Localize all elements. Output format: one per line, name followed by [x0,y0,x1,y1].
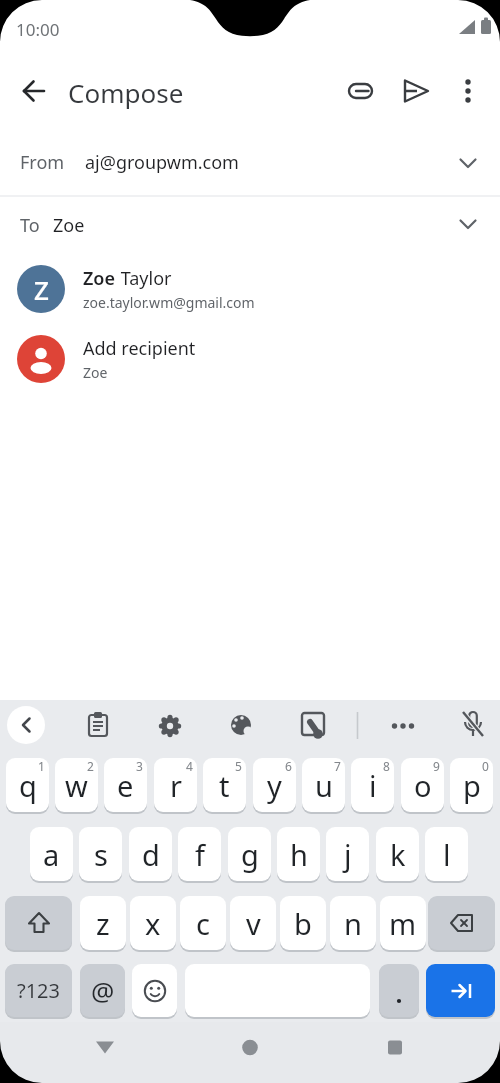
button[interactable]: g [228,827,271,881]
button[interactable]: o [401,758,444,812]
button[interactable]: Z [0,254,500,324]
button[interactable]: u [302,758,345,812]
button[interactable] [449,701,497,749]
staticText: 5 [235,758,242,774]
button[interactable] [81,1028,129,1076]
staticText: a [43,835,60,874]
button[interactable] [379,701,427,749]
staticText: m [389,904,417,943]
button[interactable]: c [180,896,226,950]
button[interactable]: w [55,758,98,812]
staticText: zoe.taylor.wm@gmail.com [83,293,255,312]
staticText: 6 [285,758,292,774]
button[interactable]: r [154,758,197,812]
button[interactable] [226,1028,274,1076]
staticText: 8 [383,758,390,774]
button[interactable]: s [79,827,122,881]
button[interactable]: Add recipient [0,324,500,394]
staticText: @ [91,973,115,1008]
staticText: 1 [38,758,45,774]
button[interactable] [428,896,495,950]
staticText: g [241,835,259,874]
staticText: n [344,904,362,943]
button[interactable]: j [326,827,369,881]
staticText: To [20,213,40,238]
button[interactable] [444,67,492,115]
button[interactable]: v [230,896,276,950]
staticText: s [94,835,108,874]
button[interactable] [7,706,45,744]
button[interactable] [185,964,370,1017]
staticText: i [369,766,377,805]
button[interactable]: a [30,827,73,881]
button[interactable]: q [6,758,49,812]
button[interactable]: i [351,758,394,812]
button[interactable] [132,964,177,1017]
staticText: 3 [136,758,143,774]
button[interactable]: p [450,758,493,812]
staticText: 0 [482,758,489,774]
staticText: Taylor [116,266,172,291]
staticText: j [344,835,352,874]
staticText: ?123 [17,977,60,1004]
button[interactable] [393,67,441,115]
button[interactable]: h [277,827,320,881]
staticText: q [19,766,37,805]
button[interactable]: m [380,896,426,950]
staticText: Zoe [83,266,116,291]
staticText: w [65,766,88,805]
staticText: Add recipient [83,336,196,361]
staticText: v [246,904,261,943]
staticText: h [290,835,308,874]
button[interactable] [426,964,495,1017]
staticText: e [117,766,134,805]
button[interactable] [146,701,194,749]
staticText: r [170,766,182,805]
staticText: 4 [186,758,193,774]
button[interactable]: b [280,896,326,950]
button[interactable]: x [130,896,176,950]
staticText: l [443,835,451,874]
staticText: Z [34,272,49,307]
staticText: Compose [68,75,184,110]
button[interactable]: e [104,758,147,812]
staticText: f [195,835,205,874]
button[interactable] [336,67,384,115]
button[interactable]: n [330,896,376,950]
button[interactable]: From [0,142,500,195]
staticText: 2 [87,758,94,774]
button[interactable]: @ [80,964,125,1017]
staticText: 10:00 [16,18,60,41]
staticText: Zoe [53,213,85,238]
staticText: c [196,904,210,943]
staticText: z [96,904,110,943]
button[interactable]: t [203,758,246,812]
staticText: k [390,835,406,874]
button[interactable]: d [129,827,172,881]
button[interactable] [217,701,265,749]
staticText: b [294,904,312,943]
button[interactable] [371,1028,419,1076]
button[interactable]: y [253,758,296,812]
button[interactable] [5,896,72,950]
button[interactable] [379,964,419,1017]
button[interactable]: To [0,197,500,254]
staticText: o [414,766,432,805]
staticText: p [463,766,481,805]
button[interactable]: l [425,827,468,881]
button[interactable]: k [376,827,419,881]
staticText: x [145,904,161,943]
button[interactable]: z [80,896,126,950]
staticText: 9 [433,758,440,774]
staticText: Zoe [83,363,108,382]
button[interactable] [289,701,337,749]
staticText: y [267,766,282,805]
staticText: From [20,150,65,175]
staticText: d [142,835,160,874]
button[interactable] [10,67,58,115]
staticText: u [315,766,333,805]
button[interactable]: f [178,827,221,881]
button[interactable]: ?123 [5,964,72,1017]
button[interactable] [74,701,122,749]
staticText: t [219,766,230,805]
